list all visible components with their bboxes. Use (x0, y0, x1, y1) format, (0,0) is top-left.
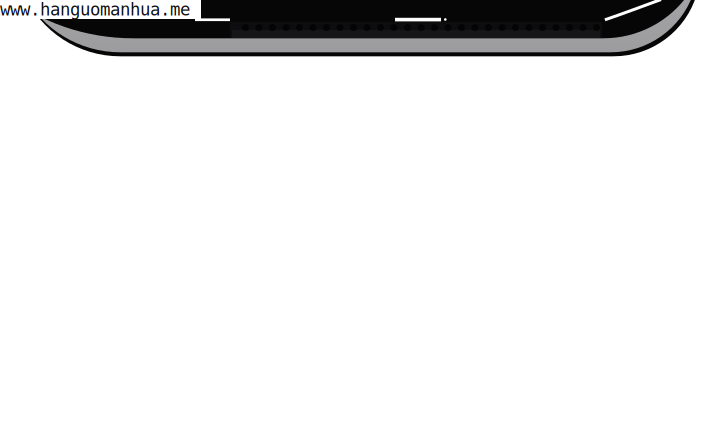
staticText: www.hanguomanhua.me (0, 0, 190, 20)
